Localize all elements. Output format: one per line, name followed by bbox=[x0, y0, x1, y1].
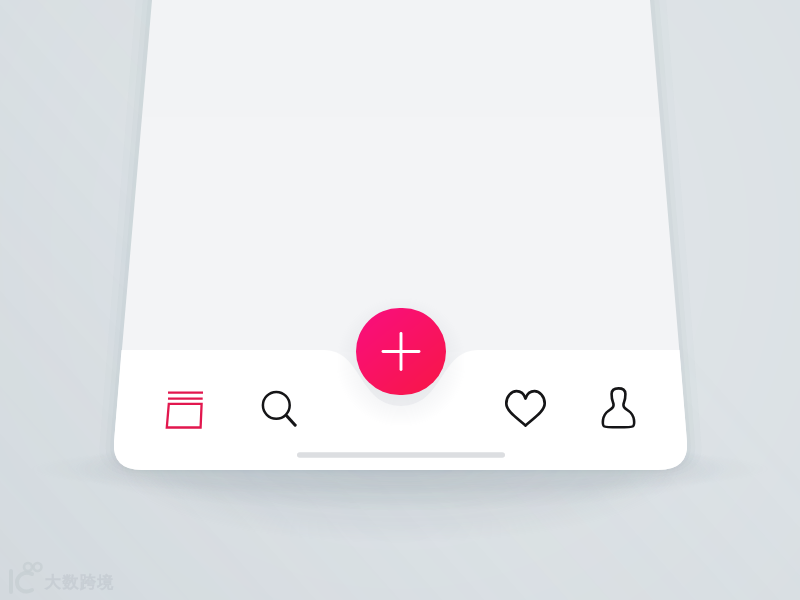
button[interactable] bbox=[501, 384, 549, 432]
button[interactable] bbox=[356, 308, 446, 395]
button[interactable] bbox=[162, 386, 210, 434]
button[interactable] bbox=[252, 382, 300, 430]
button[interactable] bbox=[596, 384, 644, 432]
staticText: 大数跨境 bbox=[44, 573, 114, 593]
